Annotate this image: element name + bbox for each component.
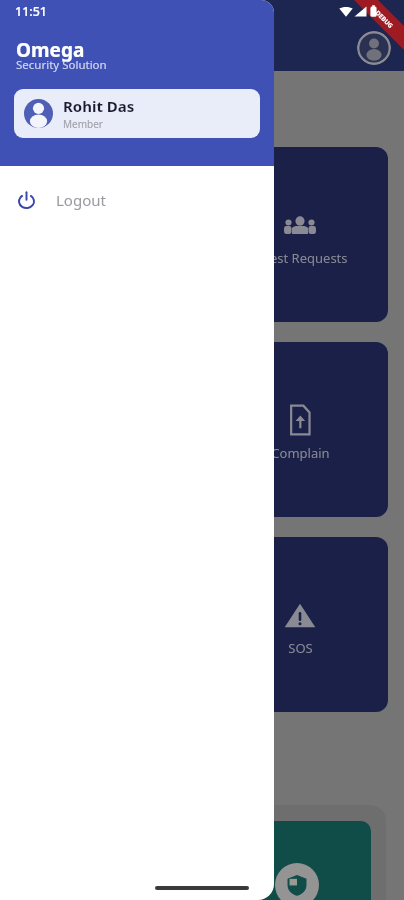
button[interactable]: Security: [275, 863, 319, 900]
button[interactable]: Logout: [0, 177, 274, 223]
button[interactable]: Guest Requests: [212, 147, 388, 322]
button[interactable]: Complain: [212, 342, 388, 517]
staticText: Complain: [271, 444, 330, 462]
button[interactable]: [20, 821, 371, 900]
staticText: SOS: [288, 639, 313, 657]
staticText: Security Solution: [16, 57, 107, 73]
staticText: Member: [63, 117, 103, 131]
staticText: Rohit Das: [63, 96, 135, 116]
button[interactable]: Profile: [357, 31, 391, 65]
button[interactable]: Visitors: [16, 147, 192, 322]
staticText: Omega: [16, 37, 85, 63]
staticText: Guest Requests: [252, 249, 348, 267]
staticText: Logout: [56, 190, 106, 210]
staticText: 11:51: [15, 3, 48, 20]
button[interactable]: SOS: [212, 537, 388, 712]
button[interactable]: Rohit Das: [14, 89, 260, 138]
